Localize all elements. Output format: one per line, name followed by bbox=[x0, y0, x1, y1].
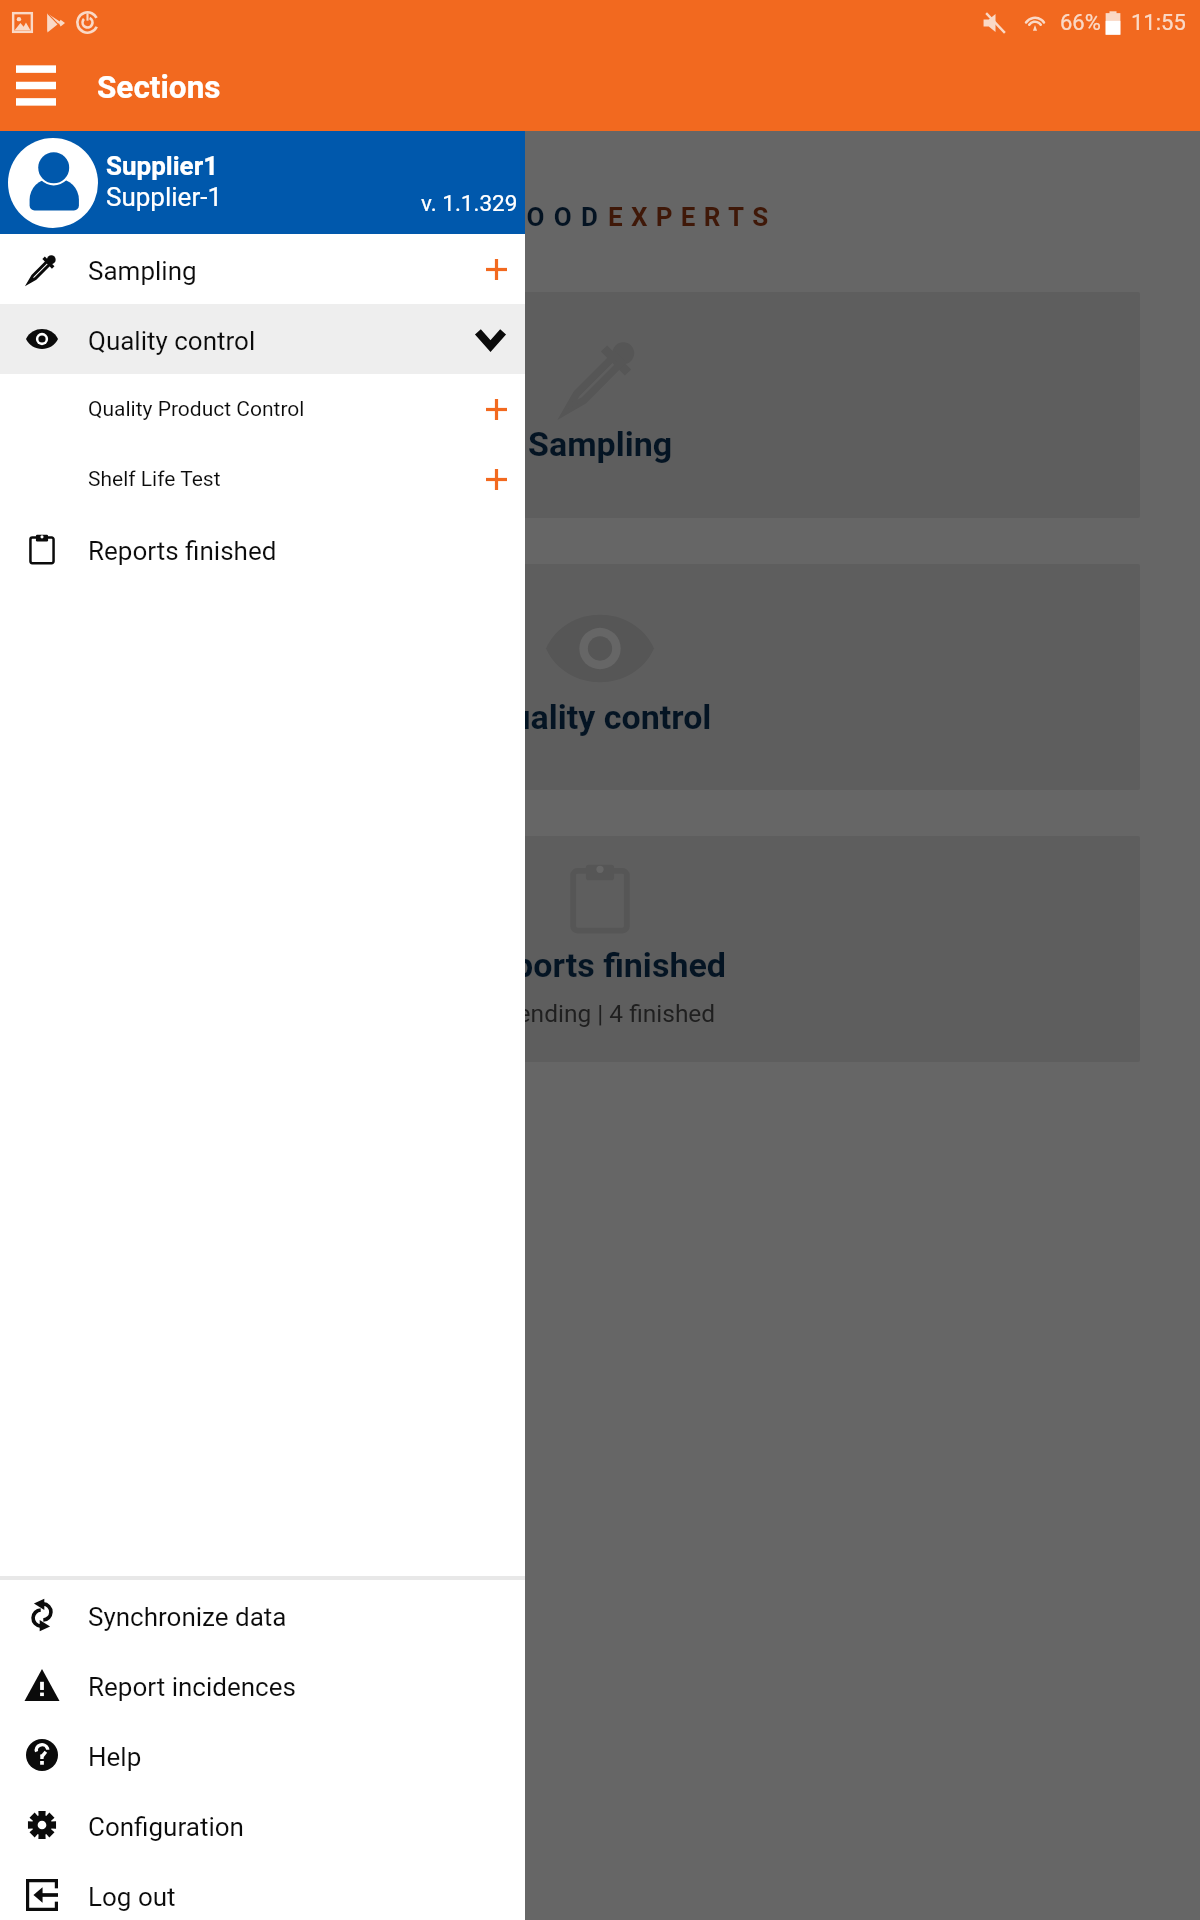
staticText: Supplier-1 bbox=[106, 182, 223, 212]
staticText: 11:55 bbox=[1131, 10, 1186, 36]
staticText: Sampling bbox=[88, 256, 197, 286]
staticText: v. 1.1.329 bbox=[421, 190, 518, 216]
staticText: Sampling bbox=[528, 424, 673, 464]
button[interactable]: Shelf Life Test bbox=[0, 444, 525, 514]
staticText: Quality Product Control bbox=[88, 397, 305, 422]
staticText: Quality control bbox=[488, 697, 712, 737]
button[interactable]: Help bbox=[0, 1720, 525, 1790]
staticText: 0 pending | 4 finished bbox=[484, 999, 716, 1028]
staticText: Log out bbox=[88, 1882, 176, 1912]
staticText: FOOD bbox=[503, 202, 608, 232]
staticText: EXPERTS bbox=[608, 202, 777, 232]
staticText: Help bbox=[88, 1742, 142, 1772]
staticText: 66% bbox=[1060, 10, 1101, 36]
button[interactable]: Quality control bbox=[60, 564, 1140, 790]
button[interactable]: Add Shelf Life Test bbox=[465, 454, 517, 504]
button[interactable]: Add Quality Product Control bbox=[465, 384, 517, 434]
button[interactable]: Sampling bbox=[60, 292, 1140, 518]
button[interactable]: Report incidences bbox=[0, 1650, 525, 1720]
staticText: Shelf Life Test bbox=[88, 467, 221, 492]
staticText: Synchronize data bbox=[88, 1602, 287, 1632]
button[interactable]: Synchronize data bbox=[0, 1580, 525, 1650]
staticText: Reports finished bbox=[88, 536, 277, 566]
button[interactable]: Add Sampling bbox=[465, 244, 517, 294]
button[interactable]: Log out bbox=[0, 1860, 525, 1920]
staticText: Report incidences bbox=[88, 1672, 296, 1702]
button[interactable]: Collapse Quality control bbox=[460, 314, 521, 364]
button[interactable]: Quality control bbox=[0, 304, 525, 374]
button[interactable]: Reports finished bbox=[0, 514, 525, 584]
button[interactable]: Reports finished bbox=[60, 836, 1140, 1062]
button[interactable]: Supplier1 bbox=[0, 131, 525, 234]
button[interactable]: Configuration bbox=[0, 1790, 525, 1860]
staticText: Sections bbox=[97, 69, 221, 106]
staticText: Quality control bbox=[88, 326, 256, 356]
staticText: Configuration bbox=[88, 1812, 244, 1842]
button[interactable]: Sampling bbox=[0, 234, 525, 304]
button[interactable]: Open navigation menu bbox=[6, 51, 66, 119]
staticText: Supplier1 bbox=[106, 151, 219, 181]
button[interactable]: Quality Product Control bbox=[0, 374, 525, 444]
staticText: Reports finished bbox=[474, 945, 726, 985]
